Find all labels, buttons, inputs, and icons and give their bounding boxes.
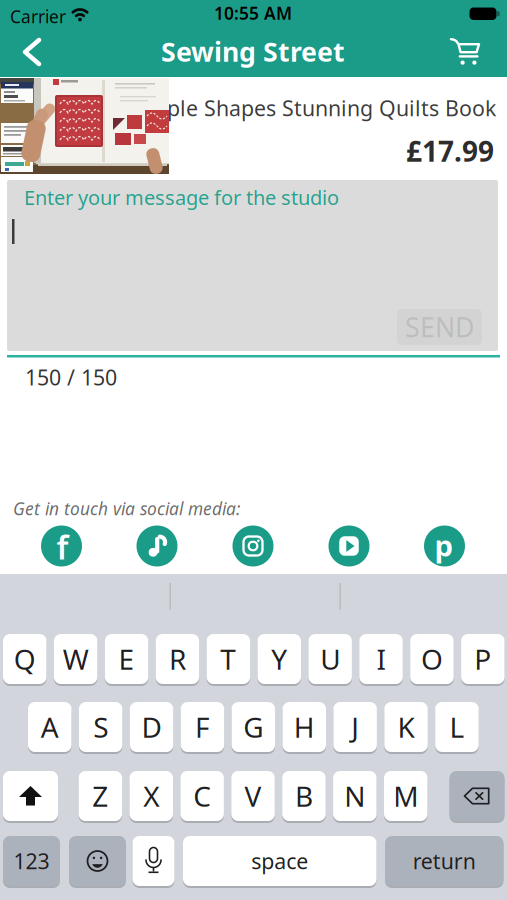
button[interactable]: M [384,771,427,823]
staticText: Carrier [10,5,66,28]
staticText: M [393,777,418,815]
staticText: C [193,777,211,815]
button[interactable]: P [461,634,505,686]
staticText: 150 / 150 [25,363,117,391]
button[interactable]: I [359,634,403,686]
staticText: V [244,777,261,815]
button[interactable]: F [181,702,224,754]
button[interactable]: B [282,771,326,823]
button[interactable]: SEND [397,309,482,345]
button[interactable]: TikTok [136,525,177,566]
staticText: J [351,708,359,746]
button[interactable]: N [333,771,377,823]
staticText: £17.99 [406,132,494,170]
staticText: D [142,708,162,746]
staticText: R [169,640,186,678]
button[interactable]: A [28,702,71,754]
button[interactable]: C [180,771,224,823]
button[interactable]: D [130,702,173,754]
staticText: p [434,525,453,564]
staticText: U [320,640,340,678]
staticText: F [195,708,210,746]
button[interactable]: Delete [449,771,504,823]
staticText: B [295,777,313,815]
button[interactable]: J [333,702,377,754]
button[interactable]: Z [79,771,122,823]
button[interactable]: W [54,634,97,686]
staticText: space [251,847,308,875]
button[interactable]: space [183,836,376,888]
button[interactable]: Facebook [41,525,82,566]
button[interactable]: O [410,634,454,686]
button[interactable]: YouTube [328,525,369,566]
staticText: Z [92,777,108,815]
button[interactable]: H [282,702,326,754]
staticText: S [93,708,108,746]
button[interactable]: Y [257,634,301,686]
button[interactable]: Instagram [232,525,273,566]
staticText: return [413,847,476,875]
button[interactable]: V [231,771,275,823]
button[interactable]: Numbers [3,836,60,888]
button[interactable]: Q [3,634,46,686]
staticText: O [421,640,443,678]
button[interactable]: S [79,702,122,754]
staticText: T [220,640,236,678]
staticText: N [344,777,365,815]
button[interactable]: T [207,634,250,686]
staticText: SEND [405,309,474,345]
staticText: K [398,708,415,746]
button[interactable]: E [105,634,148,686]
staticText: X [143,777,159,815]
button[interactable]: Cart [449,36,483,66]
button[interactable]: L [435,702,479,754]
staticText: H [294,708,315,746]
staticText: Y [271,640,287,678]
staticText: 10:55 AM [214,1,292,24]
button[interactable]: U [308,634,352,686]
button[interactable]: Shift [3,771,58,823]
staticText: 123 [13,847,49,875]
staticText: Sewing Street [161,34,345,69]
staticText: f [56,526,68,568]
staticText: A [41,708,59,746]
button[interactable]: G [232,702,275,754]
button[interactable]: K [384,702,428,754]
staticText: E [118,640,134,678]
staticText: Get in touch via social media: [13,497,240,520]
button[interactable]: Dictate [132,836,174,888]
staticText: W [63,640,89,678]
staticText: L [449,708,464,746]
button[interactable]: Emoji [69,836,126,888]
staticText: Enter your message for the studio [24,184,339,211]
button[interactable]: R [156,634,199,686]
button[interactable]: Back [11,34,55,70]
staticText: I [377,640,386,678]
staticText: P [474,640,491,678]
staticText: G [243,708,263,746]
staticText: Simple Shapes Stunning Quilts Book [129,94,496,122]
staticText: Q [14,640,36,678]
button[interactable]: Pinterest [424,525,465,566]
button[interactable]: X [129,771,173,823]
button[interactable]: return [385,836,503,888]
